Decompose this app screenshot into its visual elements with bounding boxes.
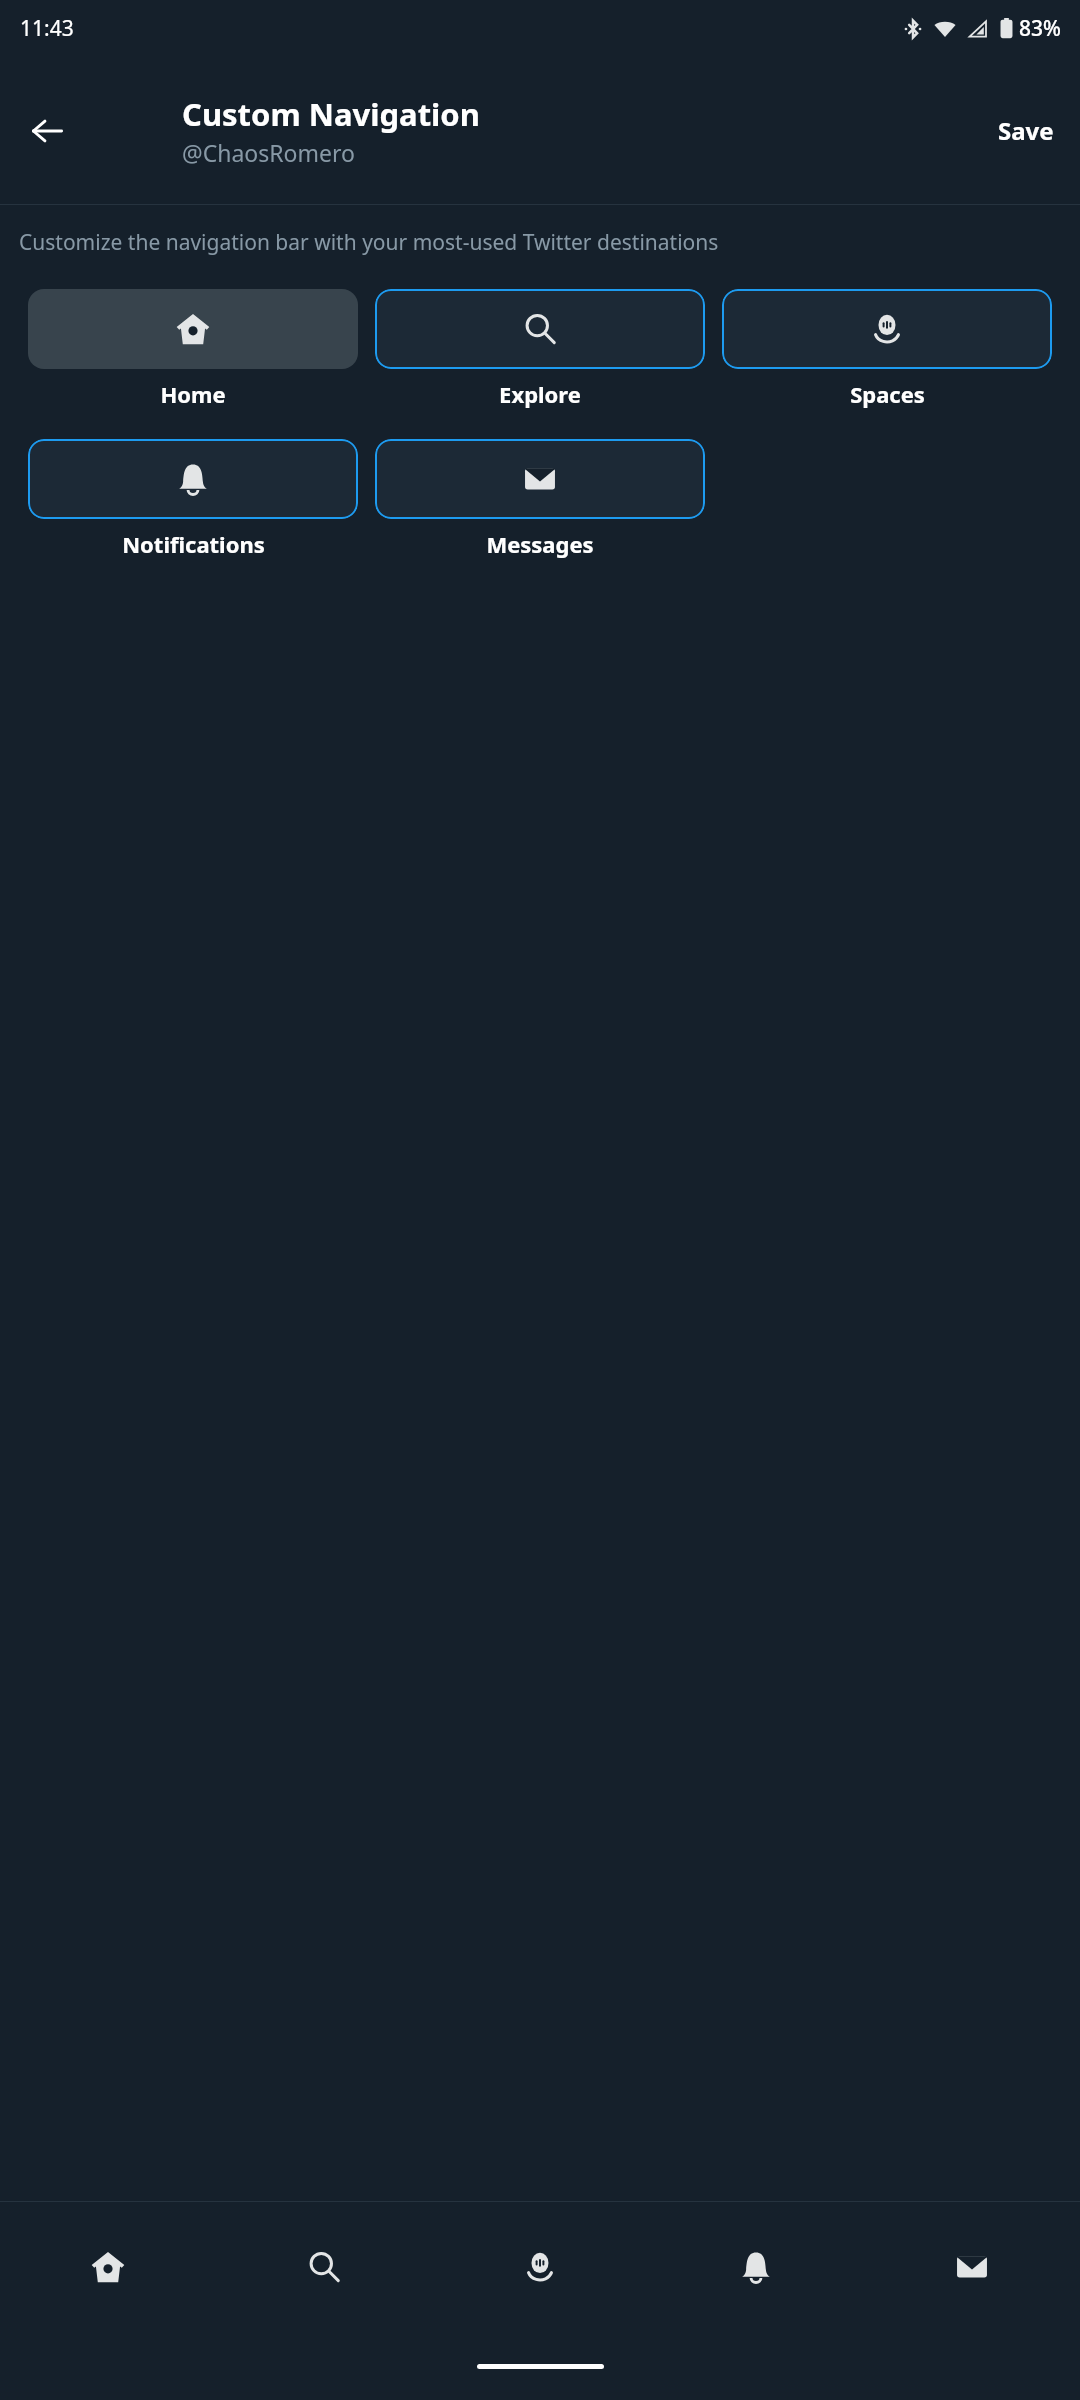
staticText: 11:43 <box>20 14 74 43</box>
staticText: Notifications <box>122 529 265 559</box>
button[interactable]: Explore <box>216 2202 432 2332</box>
button[interactable]: Home <box>0 2202 216 2332</box>
staticText: Messages <box>486 529 594 559</box>
button[interactable]: Notifications <box>648 2202 864 2332</box>
staticText: @ChaosRomero <box>182 137 355 168</box>
button[interactable]: Messages <box>375 439 705 559</box>
button[interactable]: Notifications <box>28 439 358 559</box>
staticText: Explore <box>499 379 581 409</box>
staticText: Spaces <box>850 379 925 409</box>
button[interactable]: Save <box>988 104 1064 157</box>
button[interactable]: Spaces <box>722 289 1052 409</box>
staticText: 83% <box>1019 14 1061 43</box>
button[interactable]: Explore <box>375 289 705 409</box>
button[interactable]: Messages <box>864 2202 1080 2332</box>
staticText: Customize the navigation bar with your m… <box>19 228 719 257</box>
staticText: Home <box>160 379 226 409</box>
button[interactable]: Home <box>28 289 358 409</box>
button[interactable]: Back <box>16 100 78 162</box>
staticText: Custom Navigation <box>182 93 480 135</box>
staticText: Save <box>998 114 1054 147</box>
button[interactable]: Spaces <box>432 2202 648 2332</box>
